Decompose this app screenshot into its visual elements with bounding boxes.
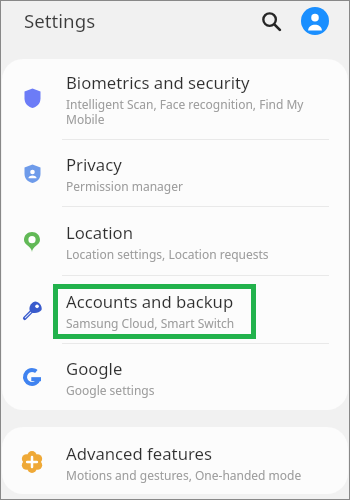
staticText: Intelligent Scan, Face recognition, Find… (66, 96, 330, 128)
button[interactable]: Privacy (2, 140, 348, 207)
button[interactable]: Accounts and backup (2, 276, 348, 344)
staticText: Privacy (66, 153, 122, 176)
button[interactable]: Search (252, 2, 290, 40)
staticText: Location (66, 221, 133, 244)
staticText: Location settings, Location requests (66, 246, 269, 262)
staticText: Biometrics and security (66, 71, 250, 94)
staticText: Permission manager (66, 178, 183, 194)
staticText: Samsung Cloud, Smart Switch (66, 315, 235, 331)
button[interactable]: Google (2, 344, 348, 410)
button[interactable]: Location (2, 207, 348, 276)
staticText: Motions and gestures, One-handed mode (66, 467, 302, 483)
button[interactable]: Advanced features (2, 431, 348, 494)
button[interactable]: Account (301, 7, 329, 35)
staticText: Accounts and backup (66, 290, 234, 313)
staticText: Settings (24, 8, 96, 33)
staticText: Google (66, 357, 123, 380)
button[interactable]: Biometrics and security (2, 59, 348, 140)
staticText: Google settings (66, 382, 155, 398)
staticText: Advanced features (66, 442, 212, 465)
